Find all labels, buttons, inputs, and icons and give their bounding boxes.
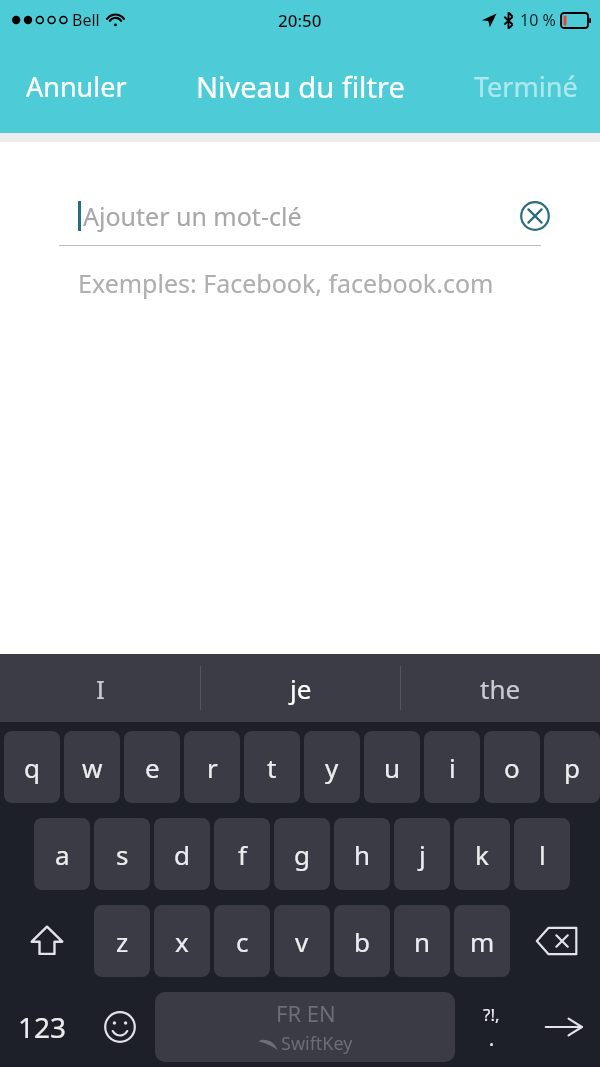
button[interactable]: s xyxy=(94,818,150,890)
staticText: . xyxy=(489,1026,495,1052)
button[interactable]: h xyxy=(334,818,390,890)
button[interactable]: t xyxy=(244,731,300,803)
button[interactable]: g xyxy=(274,818,330,890)
staticText: I xyxy=(96,671,105,706)
button[interactable]: l xyxy=(514,818,570,890)
staticText: Ajouter un mot-clé xyxy=(83,199,302,233)
button[interactable]: n xyxy=(394,905,450,977)
button[interactable]: d xyxy=(154,818,210,890)
button[interactable]: Ponctuation xyxy=(455,991,527,1063)
button[interactable]: i xyxy=(424,731,480,803)
staticText: Annuler xyxy=(26,68,127,105)
staticText: s xyxy=(116,837,129,872)
button[interactable]: je xyxy=(201,654,400,722)
staticText: Niveau du filtre xyxy=(196,67,405,106)
staticText: n xyxy=(414,924,431,959)
button[interactable]: c xyxy=(214,905,270,977)
staticText: h xyxy=(354,837,371,872)
staticText: o xyxy=(504,750,520,785)
button[interactable]: Annuler xyxy=(14,60,139,113)
staticText: f xyxy=(238,837,247,872)
button[interactable]: Terminé xyxy=(462,60,590,113)
button[interactable]: I xyxy=(0,654,200,722)
staticText: g xyxy=(294,837,310,872)
staticText: SwiftKey xyxy=(281,1031,353,1056)
staticText: e xyxy=(145,750,160,785)
button[interactable]: x xyxy=(154,905,210,977)
staticText: Terminé xyxy=(474,68,578,105)
button[interactable]: b xyxy=(334,905,390,977)
staticText: a xyxy=(55,837,70,872)
staticText: je xyxy=(290,671,312,706)
button[interactable]: Effacer xyxy=(516,197,554,235)
staticText: 20:50 xyxy=(278,9,322,32)
staticText: d xyxy=(174,837,190,872)
button[interactable]: p xyxy=(544,731,600,803)
button[interactable]: Retour arrière xyxy=(514,905,600,977)
button[interactable]: Maj xyxy=(0,905,94,977)
button[interactable]: e xyxy=(124,731,180,803)
button[interactable]: Entrée xyxy=(527,991,600,1063)
staticText: Exemples: Facebook, facebook.com xyxy=(78,266,494,300)
staticText: the xyxy=(480,671,521,706)
staticText: r xyxy=(207,750,218,785)
staticText: 123 xyxy=(18,1008,67,1046)
button[interactable]: j xyxy=(394,818,450,890)
button[interactable]: 123 xyxy=(0,991,85,1063)
button[interactable]: w xyxy=(64,731,120,803)
button[interactable]: q xyxy=(4,731,60,803)
button[interactable]: FR EN xyxy=(155,992,455,1062)
staticText: k xyxy=(475,837,489,872)
button[interactable]: r xyxy=(184,731,240,803)
button[interactable]: f xyxy=(214,818,270,890)
button[interactable]: Ajouter un mot-clé xyxy=(0,187,600,245)
staticText: ?!, xyxy=(483,1003,500,1026)
staticText: z xyxy=(116,924,129,959)
button[interactable]: u xyxy=(364,731,420,803)
staticText: FR EN xyxy=(276,998,336,1028)
staticText: u xyxy=(384,750,401,785)
staticText: q xyxy=(24,750,40,785)
button[interactable]: m xyxy=(454,905,510,977)
button[interactable]: k xyxy=(454,818,510,890)
staticText: p xyxy=(564,750,580,785)
staticText: j xyxy=(419,837,426,872)
button[interactable]: o xyxy=(484,731,540,803)
button[interactable]: Emoji xyxy=(85,991,155,1063)
staticText: i xyxy=(449,750,456,785)
button[interactable]: the xyxy=(401,654,600,722)
staticText: v xyxy=(295,924,309,959)
staticText: l xyxy=(539,837,546,872)
button[interactable]: z xyxy=(94,905,150,977)
button[interactable]: a xyxy=(34,818,90,890)
staticText: b xyxy=(354,924,370,959)
staticText: c xyxy=(236,924,249,959)
staticText: x xyxy=(175,924,189,959)
staticText: w xyxy=(82,750,103,785)
button[interactable]: y xyxy=(304,731,360,803)
staticText: t xyxy=(267,750,277,785)
staticText: 10 % xyxy=(520,9,556,31)
button[interactable]: v xyxy=(274,905,330,977)
staticText: y xyxy=(325,750,339,785)
staticText: Bell xyxy=(72,9,100,31)
staticText: m xyxy=(470,924,495,959)
